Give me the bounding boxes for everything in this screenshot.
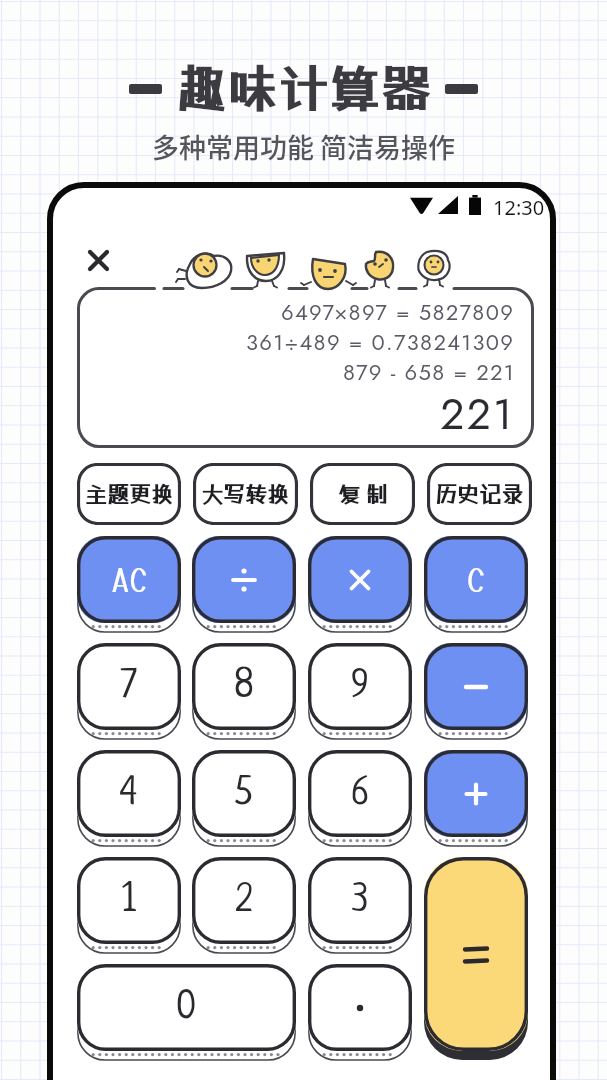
staticText: 5 xyxy=(235,773,253,815)
staticText: 12:30 xyxy=(493,194,545,215)
button[interactable]: 8 xyxy=(192,643,296,741)
staticText: 221 xyxy=(440,383,515,430)
button[interactable]: 历史记录 xyxy=(427,463,532,525)
staticText: AC xyxy=(111,562,148,599)
button[interactable]: 主题更换 xyxy=(77,463,181,525)
staticText: 多种常用功能 简洁易操作 xyxy=(152,127,456,166)
button[interactable] xyxy=(308,964,412,1062)
staticText: 趣味计算器 xyxy=(176,59,431,118)
button[interactable]: 5 xyxy=(192,750,296,848)
staticText: 879 - 658 = 221 xyxy=(343,356,515,386)
staticText: C xyxy=(467,562,485,599)
staticText: 4 xyxy=(120,773,138,815)
staticText: 复 制 xyxy=(338,481,388,507)
button[interactable] xyxy=(424,750,528,848)
button[interactable]: Close xyxy=(83,245,113,275)
button[interactable]: 6 xyxy=(308,750,412,848)
button[interactable]: 9 xyxy=(308,643,412,741)
button[interactable]: AC xyxy=(77,536,181,634)
button[interactable]: 1 xyxy=(77,857,181,955)
button[interactable]: 大写转换 xyxy=(193,463,298,525)
button[interactable] xyxy=(424,857,528,1062)
staticText: 2 xyxy=(236,880,252,922)
staticText: 0 xyxy=(176,987,197,1029)
button[interactable]: 2 xyxy=(192,857,296,955)
button[interactable]: 3 xyxy=(308,857,412,955)
button[interactable]: 0 xyxy=(77,964,296,1062)
staticText: 1 xyxy=(122,880,137,922)
staticText: 3 xyxy=(352,880,369,922)
staticText: 大写转换 xyxy=(201,481,290,507)
button[interactable]: 复 制 xyxy=(310,463,415,525)
button[interactable] xyxy=(192,536,296,634)
staticText: 6 xyxy=(351,773,369,815)
staticText: 9 xyxy=(351,666,369,708)
button[interactable] xyxy=(424,643,528,741)
button[interactable] xyxy=(308,536,412,634)
button[interactable]: C xyxy=(424,536,528,634)
button[interactable]: 4 xyxy=(77,750,181,848)
staticText: 主题更换 xyxy=(85,481,174,507)
staticText: 361÷489 = 0.738241309 xyxy=(246,326,515,356)
staticText: 6497×897 = 5827809 xyxy=(281,296,515,326)
button[interactable]: 7 xyxy=(77,643,181,741)
staticText: 7 xyxy=(121,666,137,708)
staticText: 历史记录 xyxy=(435,481,524,507)
staticText: 8 xyxy=(234,666,254,708)
